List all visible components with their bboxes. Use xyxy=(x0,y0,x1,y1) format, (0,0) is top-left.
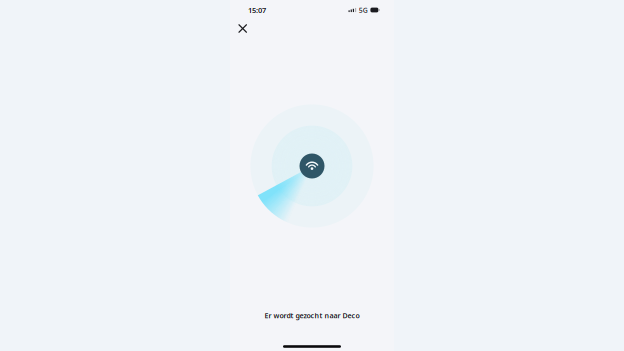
button[interactable]: Close xyxy=(232,18,253,39)
staticText: 15:07 xyxy=(248,5,266,15)
staticText: Er wordt gezocht naar Deco xyxy=(264,311,359,320)
staticText: 5G xyxy=(359,5,368,15)
